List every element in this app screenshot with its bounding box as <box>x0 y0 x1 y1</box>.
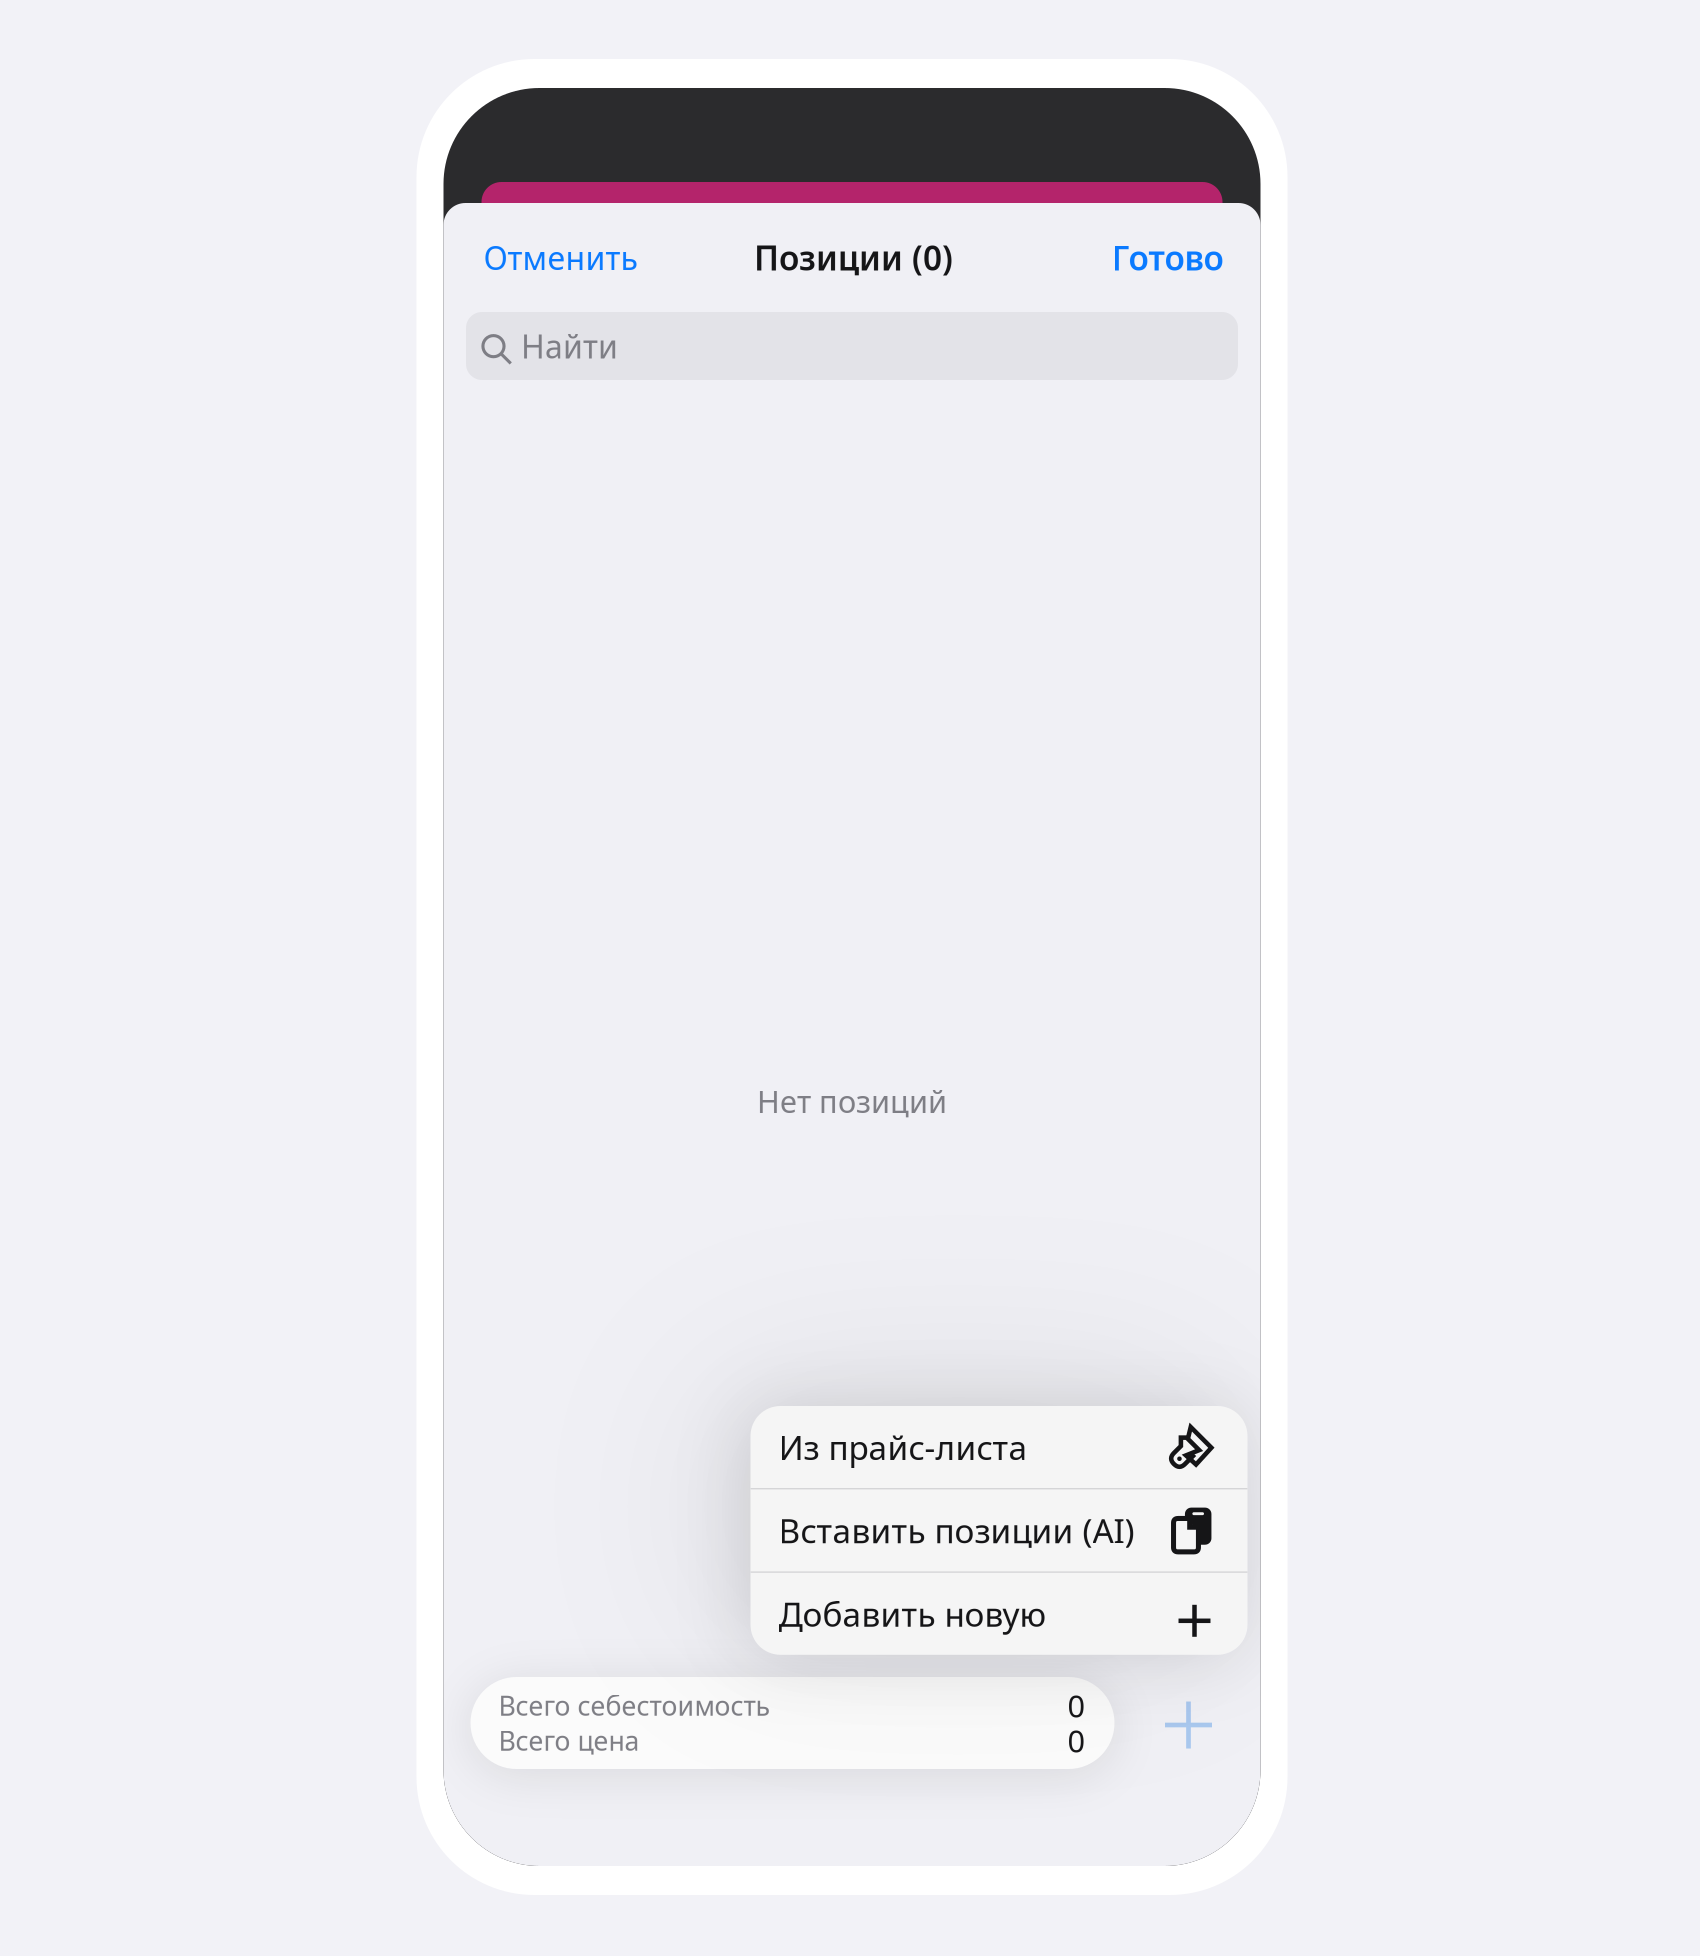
button[interactable]: Найти <box>466 312 1238 380</box>
staticText: Всего себестоимость <box>498 1688 770 1723</box>
staticText: Найти <box>521 325 618 367</box>
staticText: Отменить <box>483 236 637 279</box>
staticText: Из прайс-листа <box>778 1425 1027 1469</box>
button[interactable]: Всего себестоимость <box>470 1677 1114 1769</box>
button[interactable]: Добавить позицию <box>1138 1679 1238 1771</box>
button[interactable]: Добавить новую <box>750 1573 1247 1655</box>
staticText: Всего цена <box>498 1723 639 1758</box>
staticText: Готово <box>1111 235 1223 280</box>
staticText: 0 <box>1067 1720 1085 1761</box>
staticText: Вставить позиции (AI) <box>778 1508 1134 1553</box>
staticText: Добавить новую <box>778 1592 1046 1636</box>
staticText: Позиции (0) <box>754 235 953 280</box>
button[interactable]: Вставить позиции (AI) <box>750 1489 1247 1571</box>
button[interactable]: Отменить <box>483 211 637 303</box>
staticText: Нет позиций <box>757 1081 947 1121</box>
staticText: 0 <box>1067 1685 1085 1726</box>
button[interactable]: Из прайс-листа <box>750 1406 1247 1488</box>
button[interactable]: Готово <box>1111 211 1223 303</box>
